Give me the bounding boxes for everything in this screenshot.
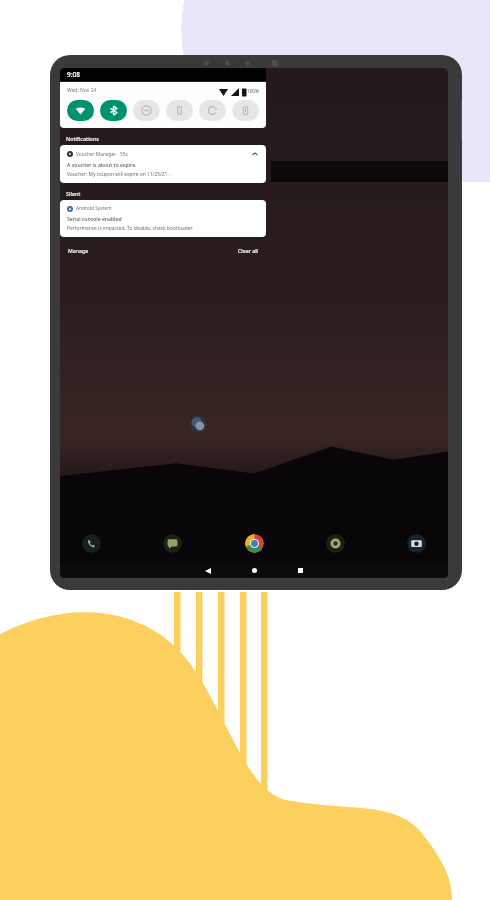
button[interactable]: Back — [185, 563, 231, 578]
staticText: A voucher is about to expire. — [67, 162, 137, 169]
staticText: Clear all — [238, 247, 258, 254]
button[interactable]: Home — [231, 563, 277, 578]
staticText: Voucher: My coupon will expire on 11/25/… — [67, 171, 170, 178]
staticText: 100% — [247, 88, 259, 94]
button[interactable]: Flashlight — [166, 100, 193, 121]
button[interactable]: Bluetooth — [100, 100, 127, 121]
staticText: Notifications — [66, 135, 99, 142]
staticText: Silent — [66, 190, 81, 197]
staticText: Serial console enabled — [67, 216, 122, 223]
button[interactable]: Camera — [407, 534, 426, 553]
button[interactable]: Battery saver — [232, 100, 259, 121]
staticText: 9:08 — [67, 70, 80, 79]
staticText: Performance is impacted. To disable, che… — [67, 225, 193, 232]
button[interactable]: Chrome — [245, 534, 264, 553]
button[interactable]: Recents — [277, 563, 323, 578]
button[interactable]: Phone — [82, 534, 101, 553]
button[interactable]: App — [190, 416, 207, 433]
button[interactable]: Android System — [60, 200, 266, 237]
staticText: Voucher Manager · 55s — [76, 151, 128, 158]
button[interactable]: Photos — [326, 534, 345, 553]
staticText: Android System — [76, 205, 112, 212]
button[interactable]: Messages — [163, 534, 182, 553]
button[interactable]: Wi-Fi — [67, 100, 94, 121]
button[interactable]: Do not disturb — [133, 100, 160, 121]
button[interactable]: Voucher Manager · 55s — [60, 145, 266, 183]
staticText: Manage — [68, 247, 89, 254]
button[interactable]: Collapse — [251, 150, 259, 158]
button[interactable]: Clear all — [236, 245, 260, 256]
staticText: Wed, Nov 24 — [67, 87, 97, 94]
button[interactable]: Manage — [66, 245, 91, 256]
button[interactable]: Auto rotate — [199, 100, 226, 121]
